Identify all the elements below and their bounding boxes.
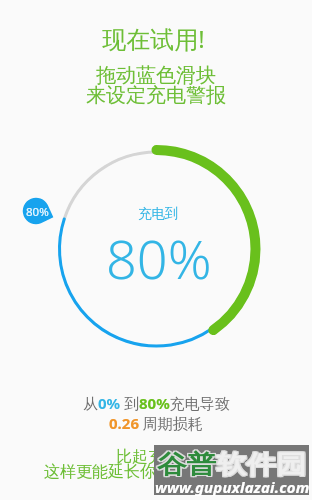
staticText: 比起充满电 [116,447,196,467]
staticText: 谷普 [158,448,218,479]
staticText: 80% [106,221,212,295]
staticText: 从0% 到80%充电导致 [83,393,230,413]
staticText: 软件园 [218,450,307,481]
staticText: 软件园 [215,448,305,479]
staticText: 拖动蓝色滑块 [96,63,216,88]
staticText: 这样更能延长你的电池使用寿命 [44,462,268,482]
staticText: 软件园 [216,448,306,479]
staticText: 软件园 [215,449,305,480]
staticText: 软件园 [216,449,306,480]
staticText: 软件园 [215,450,305,481]
staticText: 来设定充电警报 [86,83,226,108]
staticText: 充电到 [138,205,179,222]
button[interactable]: Charge level slider 80 percent [20,195,58,233]
staticText: 谷普 [156,449,215,480]
staticText: 谷普 [157,450,216,481]
staticText: 现在试用! [102,22,205,55]
staticText: 谷普 [157,449,216,480]
staticText: 软件园 [218,448,307,479]
staticText: 80% [26,204,49,220]
staticText: 软件园 [216,450,306,481]
staticText: 0.26 周期损耗 [109,413,203,433]
staticText: www.gupuxlazai.com [155,477,310,497]
staticText: 谷普 [156,448,215,479]
staticText: 谷普 [157,448,216,479]
staticText: 谷普 [158,450,218,481]
staticText: 谷普 [158,449,218,480]
staticText: 软件园 [218,449,307,480]
staticText: 谷普 [156,450,215,481]
